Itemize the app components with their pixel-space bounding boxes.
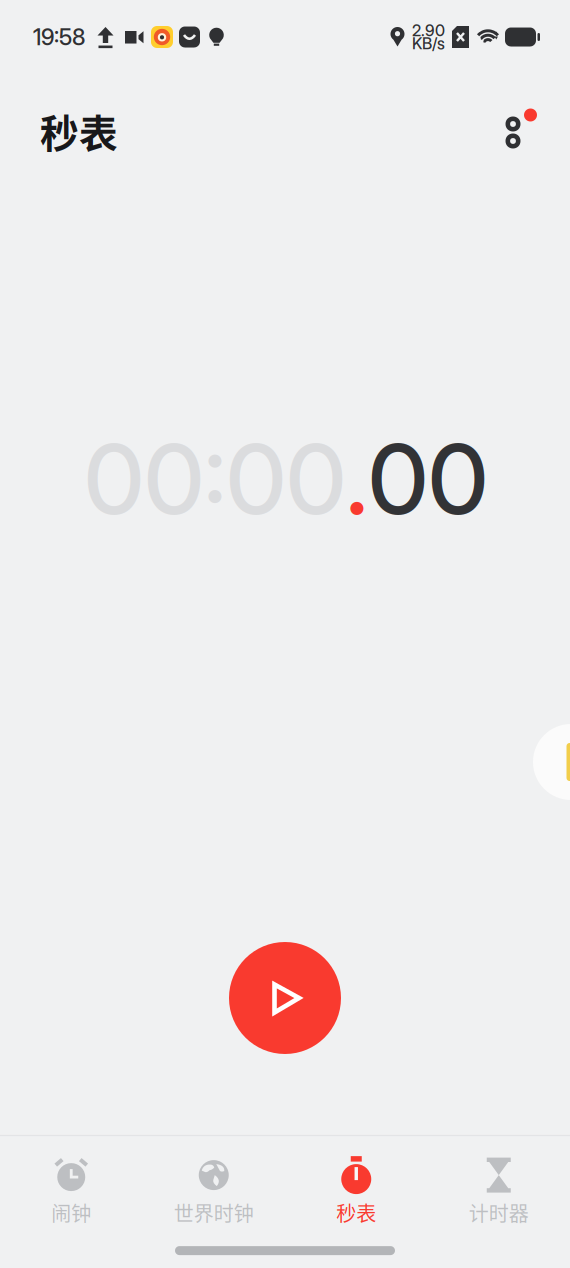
staticText: 2.90	[412, 21, 445, 40]
staticText: 世界时钟	[174, 1198, 254, 1227]
staticText: 计时器	[469, 1198, 529, 1227]
staticText: 秒表	[336, 1198, 376, 1227]
button[interactable]: 世界时钟	[142, 1136, 285, 1233]
button[interactable]: 秒表	[285, 1136, 427, 1233]
staticText: KB/s	[412, 34, 445, 53]
button[interactable]: Assistant	[533, 724, 570, 800]
button[interactable]: Start	[229, 942, 341, 1054]
button[interactable]: 计时器	[427, 1136, 570, 1233]
staticText: 00:00	[84, 421, 346, 537]
staticText: 00	[368, 421, 488, 537]
button[interactable]: More options	[500, 100, 548, 152]
staticText: 19:58	[33, 23, 85, 51]
staticText: 闹钟	[51, 1198, 91, 1227]
button[interactable]: 闹钟	[0, 1136, 142, 1233]
staticText: .	[346, 421, 368, 537]
staticText: 秒表	[40, 103, 118, 159]
